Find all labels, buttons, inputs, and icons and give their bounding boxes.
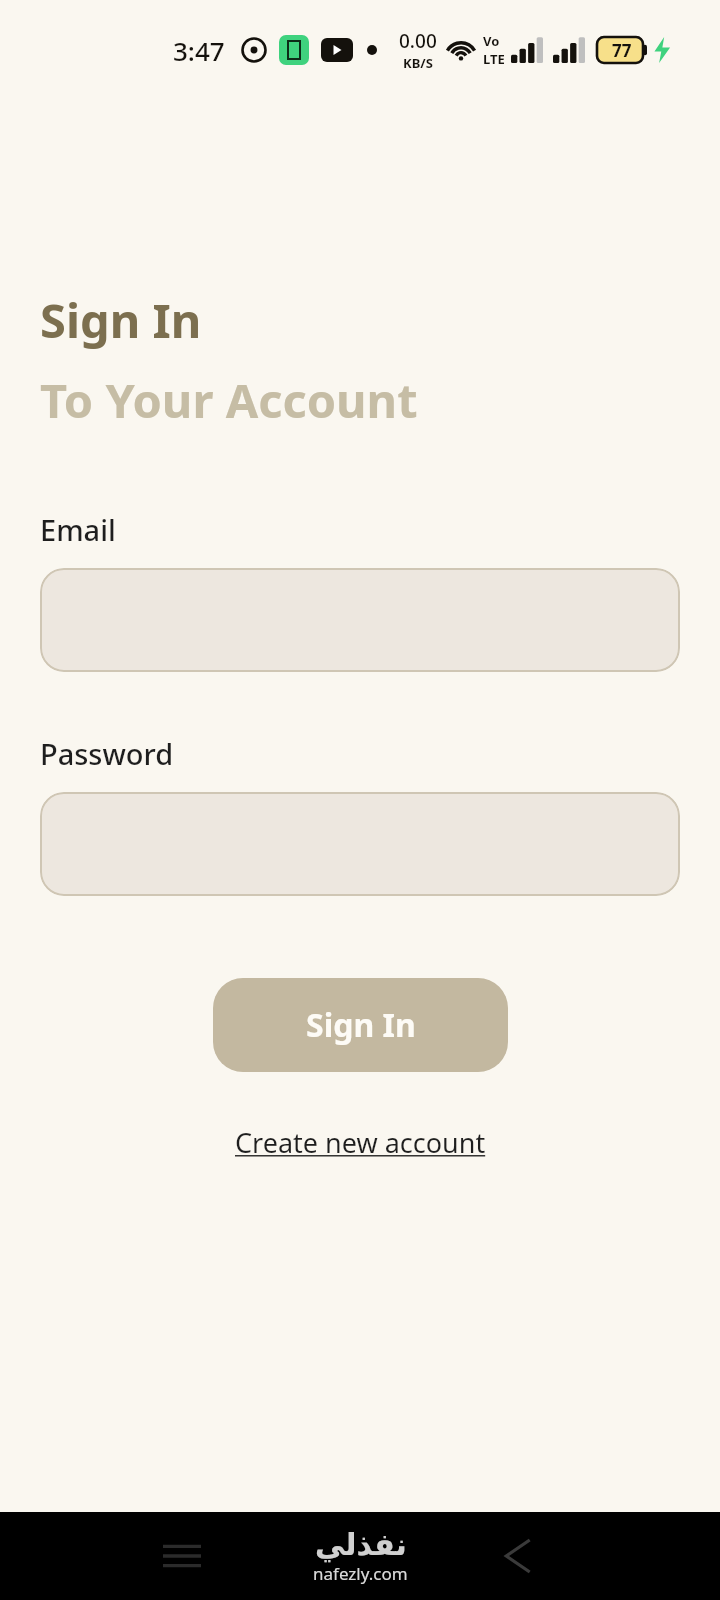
button[interactable]: Recents: [142, 1516, 222, 1596]
staticText: 0.00: [399, 28, 437, 54]
button[interactable]: Create new account: [229, 1120, 492, 1165]
button[interactable]: Sign In: [213, 978, 508, 1072]
staticText: Vo: [483, 32, 500, 50]
staticText: Sign In: [306, 1003, 416, 1047]
staticText: Email: [40, 510, 116, 549]
staticText: 3:47: [173, 33, 225, 68]
staticText: نفذلي: [315, 1527, 407, 1562]
staticText: To Your Account: [40, 368, 418, 432]
button[interactable]: [40, 568, 680, 672]
button[interactable]: Back: [478, 1516, 558, 1596]
staticText: LTE: [483, 50, 505, 68]
staticText: nafezly.com: [313, 1562, 408, 1585]
staticText: Sign In: [40, 288, 202, 352]
button[interactable]: [40, 792, 680, 896]
staticText: KB/S: [403, 54, 433, 72]
staticText: Password: [40, 734, 174, 773]
staticText: 77: [612, 39, 632, 62]
staticText: Create new account: [235, 1124, 486, 1161]
